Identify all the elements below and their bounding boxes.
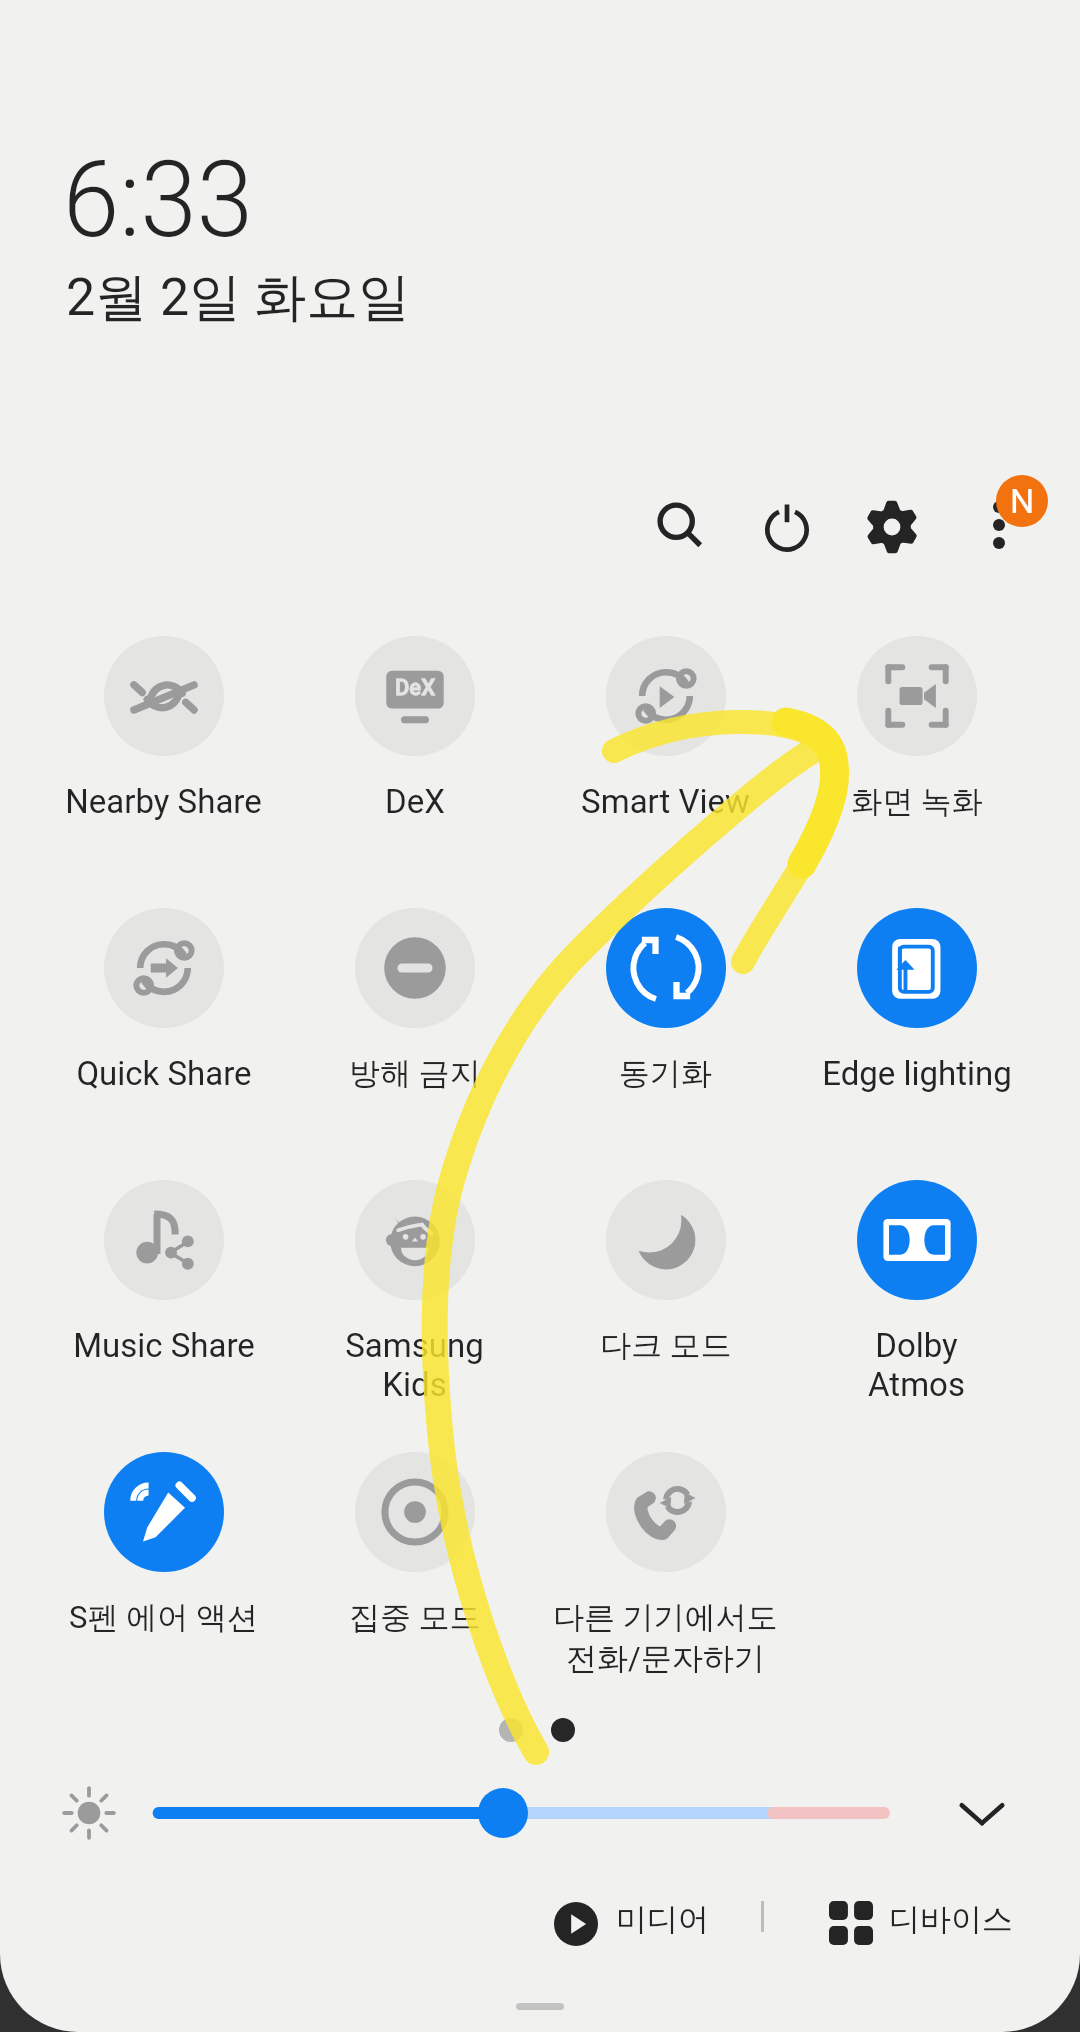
button[interactable] [791,636,1042,872]
button[interactable]: Settings [840,475,944,579]
staticText: Quick Share [76,1054,252,1093]
staticText: 다른 기기에서도 전화/문자하기 [553,1598,778,1678]
staticText: 미디어 [616,1900,709,1939]
button[interactable] [38,1452,289,1688]
staticText: Music Share [73,1326,255,1365]
staticText: 동기화 [619,1054,712,1093]
button[interactable] [540,908,791,1144]
staticText: 다크 모드 [600,1326,732,1365]
button[interactable] [540,1180,791,1416]
button[interactable]: Page 1 [479,1698,543,1762]
button[interactable] [38,636,289,872]
button[interactable]: Expand quick settings [932,1763,1032,1863]
button[interactable] [289,1180,540,1416]
button[interactable]: 미디어 [538,1885,728,1965]
staticText: 방해 금지 [349,1054,481,1093]
staticText: Samsung Kids [345,1326,484,1404]
button[interactable] [791,908,1042,1144]
staticText: Dolby Atmos [868,1326,965,1404]
staticText: DeX [395,675,436,701]
staticText: 화면 녹화 [851,782,983,821]
button[interactable] [540,1452,791,1688]
staticText: 집중 모드 [349,1598,481,1637]
staticText: S펜 에어 액션 [69,1598,258,1637]
staticText: Nearby Share [65,782,262,821]
staticText: Edge lighting [822,1054,1012,1093]
button[interactable]: 디바이스 [812,1885,1032,1965]
button[interactable] [38,1180,289,1416]
button[interactable] [289,1452,540,1688]
staticText: 6:33 [63,139,253,262]
button[interactable]: More options [947,475,1051,579]
button[interactable] [289,908,540,1144]
button[interactable]: Search [629,475,733,579]
staticText: DeX [385,782,445,821]
button[interactable]: DeX [289,636,540,872]
button[interactable] [791,1180,1042,1416]
button[interactable]: Brightness [29,1753,149,1873]
button[interactable] [38,908,289,1144]
button[interactable]: Power off [735,475,839,579]
button[interactable]: Brightness slider [130,1773,912,1853]
staticText: N [1010,481,1035,521]
staticText: 디바이스 [889,1900,1013,1939]
staticText: Smart View [581,782,750,821]
button[interactable]: Page 2 [531,1698,595,1762]
button[interactable] [540,636,791,872]
staticText: 2월 2일 화요일 [66,265,411,331]
